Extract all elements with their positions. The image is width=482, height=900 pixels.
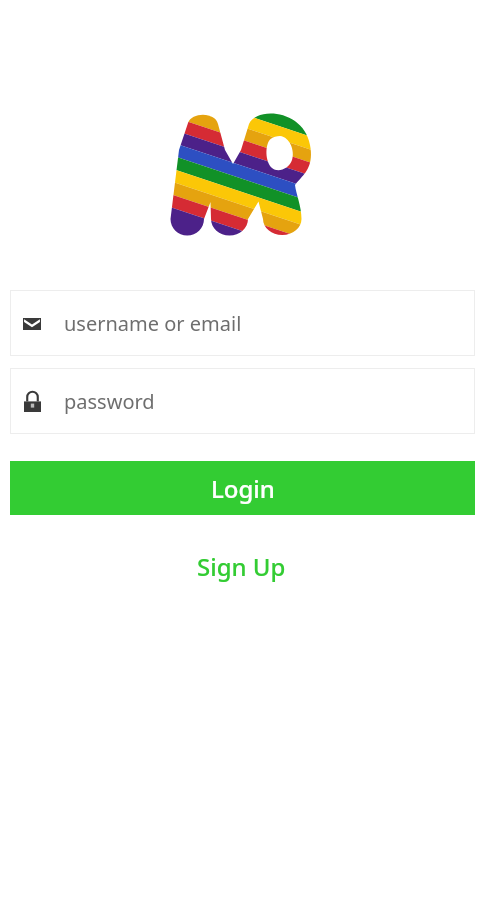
button[interactable]: username or email xyxy=(10,290,475,356)
staticText: username or email xyxy=(64,310,242,337)
staticText: password xyxy=(64,388,155,415)
staticText: Sign Up xyxy=(197,550,286,583)
staticText: Login xyxy=(211,472,275,505)
button[interactable]: Sign Up xyxy=(0,548,482,584)
button[interactable]: password xyxy=(10,368,475,434)
button[interactable]: Login xyxy=(10,461,475,515)
